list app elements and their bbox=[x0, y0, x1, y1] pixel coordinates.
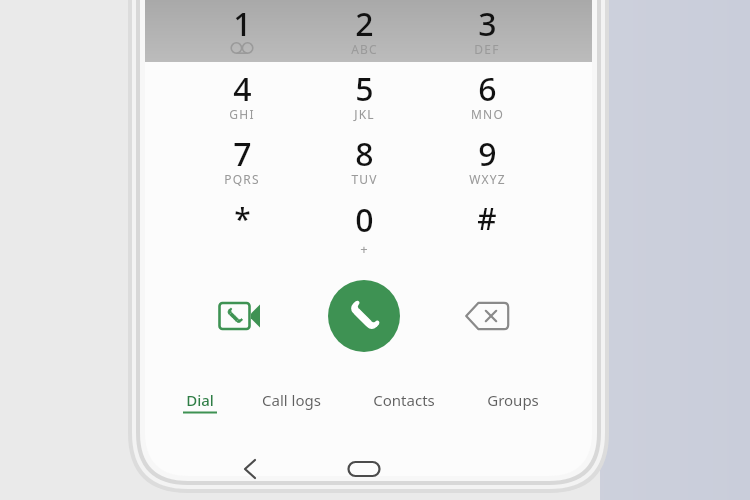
staticText: 6 bbox=[478, 67, 497, 111]
staticText: 4 bbox=[233, 67, 252, 111]
staticText: ABC bbox=[351, 41, 378, 57]
button[interactable]: 3 bbox=[427, 2, 547, 64]
button[interactable]: Call logs bbox=[243, 390, 339, 422]
button[interactable]: 9 bbox=[427, 132, 547, 194]
button[interactable]: 7 bbox=[182, 132, 302, 194]
staticText: Dial bbox=[186, 390, 214, 410]
button[interactable]: Dial bbox=[152, 390, 248, 422]
staticText: 2 bbox=[355, 2, 374, 46]
staticText: GHI bbox=[229, 106, 255, 122]
button[interactable]: 1 bbox=[182, 2, 302, 64]
staticText: + bbox=[360, 240, 368, 258]
staticText: PQRS bbox=[224, 171, 260, 187]
button[interactable]: Call bbox=[328, 280, 400, 352]
button[interactable]: 4 bbox=[182, 67, 302, 129]
staticText: 3 bbox=[478, 2, 497, 46]
staticText: Contacts bbox=[373, 390, 435, 410]
button[interactable]: 2 bbox=[304, 2, 424, 64]
staticText: MNO bbox=[471, 106, 504, 122]
staticText: Groups bbox=[487, 390, 539, 410]
staticText: 5 bbox=[355, 67, 374, 111]
staticText: 8 bbox=[355, 132, 374, 176]
staticText: # bbox=[477, 198, 497, 239]
button[interactable]: 0 bbox=[304, 198, 424, 260]
button[interactable]: 8 bbox=[304, 132, 424, 194]
button[interactable]: Video call bbox=[212, 290, 268, 342]
staticText: JKL bbox=[354, 106, 375, 122]
staticText: WXYZ bbox=[469, 171, 506, 187]
button[interactable]: Backspace bbox=[458, 292, 516, 340]
button[interactable]: 6 bbox=[427, 67, 547, 129]
button[interactable]: Back bbox=[230, 449, 270, 489]
button[interactable]: # bbox=[427, 198, 547, 260]
button[interactable]: * bbox=[182, 198, 302, 260]
staticText: DEF bbox=[474, 41, 500, 57]
staticText: * bbox=[234, 198, 251, 239]
staticText: 7 bbox=[233, 132, 252, 176]
staticText: 0 bbox=[355, 198, 374, 242]
staticText: 9 bbox=[478, 132, 497, 176]
button[interactable]: Groups bbox=[465, 390, 561, 422]
button[interactable]: Home bbox=[340, 452, 388, 486]
staticText: 1 bbox=[233, 2, 252, 46]
button[interactable]: 5 bbox=[304, 67, 424, 129]
button[interactable]: Contacts bbox=[356, 390, 452, 422]
staticText: Call logs bbox=[262, 390, 321, 410]
staticText: TUV bbox=[351, 171, 378, 187]
